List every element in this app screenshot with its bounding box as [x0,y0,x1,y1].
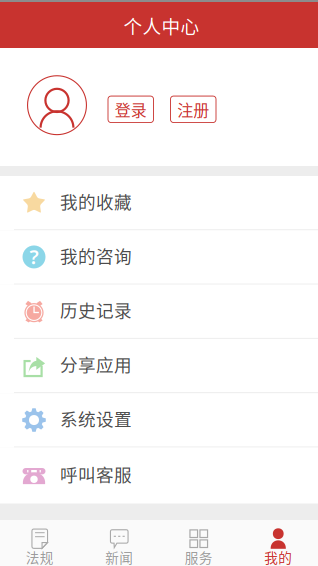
staticText: 我的 [264,547,292,566]
staticText: 我的咨询 [60,243,132,268]
staticText: 注册 [177,98,209,121]
button[interactable]: 呼叫客服 [0,447,318,503]
button[interactable]: ? [0,230,318,285]
button[interactable]: 我的收藏 [0,176,318,230]
staticText: 新闻 [105,547,133,566]
button[interactable]: 历史记录 [0,285,318,339]
staticText: 个人中心 [124,12,200,39]
staticText: 我的收藏 [60,188,132,214]
staticText: 呼叫客服 [60,461,132,487]
staticText: 法规 [26,547,54,566]
button[interactable]: 法规 [0,520,79,566]
staticText: 历史记录 [60,297,132,322]
button[interactable]: 注册 [170,96,216,122]
button[interactable]: 登录 [108,96,153,122]
button[interactable]: 新闻 [79,520,159,566]
staticText: 系统设置 [60,405,132,431]
staticText: 分享应用 [60,351,132,377]
button[interactable]: 分享应用 [0,339,318,393]
staticText: ? [29,243,38,270]
button[interactable]: 服务 [159,520,238,566]
staticText: 登录 [115,98,147,121]
staticText: 服务 [185,547,213,566]
button[interactable]: 系统设置 [0,393,318,447]
button[interactable]: 我的 [238,520,318,566]
